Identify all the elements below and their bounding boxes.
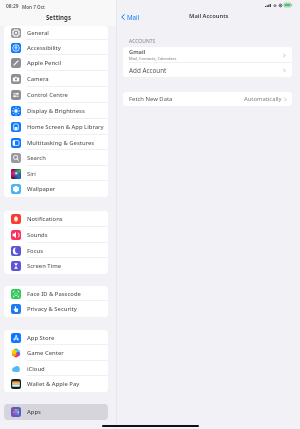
button[interactable]: Wallet & Apple Pay bbox=[4, 376, 108, 392]
other: Open bbox=[283, 53, 286, 58]
staticText: Apple Pencil bbox=[27, 59, 62, 67]
staticText: Game Center bbox=[27, 349, 64, 357]
staticText: Accessibility bbox=[27, 44, 61, 52]
other: Open bbox=[283, 68, 286, 73]
button[interactable]: Face ID & Passcode bbox=[4, 286, 108, 301]
staticText: Mail bbox=[127, 13, 140, 21]
staticText: Mon 7 Oct bbox=[22, 4, 45, 10]
staticText: Face ID & Passcode bbox=[27, 290, 81, 298]
staticText: Focus bbox=[27, 247, 44, 255]
button[interactable]: Fetch New Data bbox=[123, 92, 292, 106]
button[interactable]: Home Screen & App Library bbox=[4, 119, 108, 135]
staticText: Apps bbox=[27, 408, 41, 416]
button[interactable]: Focus bbox=[4, 243, 108, 258]
button[interactable]: Control Centre bbox=[4, 87, 108, 103]
staticText: Search bbox=[27, 154, 46, 162]
staticText: App Store bbox=[27, 334, 55, 342]
staticText: Fetch New Data bbox=[129, 95, 173, 103]
button[interactable]: Apple Pencil bbox=[4, 55, 108, 71]
button[interactable]: Sounds bbox=[4, 227, 108, 243]
button[interactable]: Search bbox=[4, 150, 108, 166]
staticText: 08:29 bbox=[6, 3, 19, 10]
staticText: Settings bbox=[46, 13, 71, 21]
button[interactable]: Screen Time bbox=[4, 258, 108, 274]
staticText: Siri bbox=[27, 170, 36, 178]
button[interactable]: Mail bbox=[121, 13, 140, 21]
button[interactable]: Multitasking & Gestures bbox=[4, 135, 108, 150]
staticText: Multitasking & Gestures bbox=[27, 139, 95, 147]
button[interactable]: Gmail bbox=[123, 47, 292, 63]
staticText: Sounds bbox=[27, 231, 48, 239]
staticText: Control Centre bbox=[27, 91, 68, 99]
staticText: Wallet & Apple Pay bbox=[27, 380, 80, 388]
staticText: Wallpaper bbox=[27, 185, 56, 193]
button[interactable]: Privacy & Security bbox=[4, 301, 108, 317]
staticText: Mail Accounts bbox=[189, 12, 229, 20]
staticText: General bbox=[27, 29, 49, 37]
staticText: Privacy & Security bbox=[27, 305, 77, 313]
button[interactable]: Add Account bbox=[123, 63, 292, 77]
staticText: Automatically bbox=[244, 95, 282, 103]
button[interactable]: Apps bbox=[4, 404, 108, 420]
button[interactable]: Notifications bbox=[4, 211, 108, 227]
staticText: Notifications bbox=[27, 215, 63, 223]
staticText: Camera bbox=[27, 75, 49, 83]
button[interactable]: Game Center bbox=[4, 345, 108, 361]
staticText: ACCOUNTS bbox=[129, 38, 156, 45]
button[interactable]: General bbox=[4, 26, 108, 40]
button[interactable]: Wallpaper bbox=[4, 181, 108, 197]
button[interactable]: Siri bbox=[4, 166, 108, 181]
button[interactable]: iCloud bbox=[4, 361, 108, 376]
staticText: Mail, Contacts, Calendars bbox=[129, 56, 177, 61]
staticText: Display & Brightness bbox=[27, 107, 85, 115]
staticText: Screen Time bbox=[27, 262, 62, 270]
other: Open bbox=[284, 97, 287, 102]
button[interactable]: Accessibility bbox=[4, 40, 108, 55]
staticText: Gmail bbox=[129, 48, 146, 56]
button[interactable]: Display & Brightness bbox=[4, 103, 108, 119]
button[interactable]: Camera bbox=[4, 71, 108, 87]
staticText: iCloud bbox=[27, 365, 45, 373]
staticText: Add Account bbox=[129, 66, 167, 75]
button[interactable]: App Store bbox=[4, 330, 108, 345]
staticText: Home Screen & App Library bbox=[27, 123, 104, 131]
